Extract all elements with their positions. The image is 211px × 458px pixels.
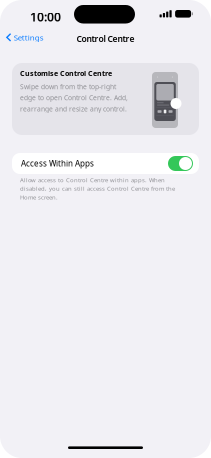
button[interactable]: Access Within Apps xyxy=(12,153,199,174)
staticText: Customise Control Centre xyxy=(20,68,112,78)
staticText: Access Within Apps xyxy=(21,158,94,169)
staticText: 10:00 xyxy=(30,8,61,25)
button[interactable]: Settings xyxy=(0,28,49,47)
staticText: Settings xyxy=(14,32,44,43)
staticText: Allow access to Control Centre within ap… xyxy=(20,176,175,201)
staticText: Control Centre xyxy=(76,33,134,45)
staticText: Swipe down from the top-right edge to op… xyxy=(20,82,128,113)
